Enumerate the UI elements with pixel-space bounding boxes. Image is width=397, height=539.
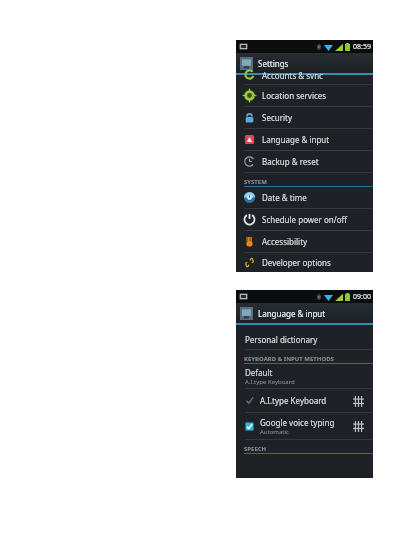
staticText: SPEECH [244,445,267,453]
button[interactable]: Settings [349,391,367,411]
staticText: Developer options [262,257,331,268]
staticText: A.I.type Keyboard [260,395,327,406]
staticText: Default [245,367,273,378]
staticText: Date & time [262,192,307,203]
button[interactable]: Google voice typing [236,413,373,440]
button[interactable]: Personal dictionary [236,329,373,350]
staticText: Google voice typing [260,417,335,428]
staticText: A.I.type Keyboard [245,378,295,386]
staticText: 08:59 [353,42,371,52]
button[interactable]: Location services [236,85,373,107]
staticText: Backup & reset [262,156,319,167]
button[interactable]: Default [236,364,373,389]
button[interactable]: Language & input [236,129,373,151]
button[interactable]: Security [236,107,373,129]
staticText: Accessibility [262,236,308,247]
button[interactable]: Accessibility [236,231,373,253]
staticText: Automatic [260,428,289,436]
staticText: Personal dictionary [245,334,318,345]
button[interactable]: A.I.type Keyboard [236,389,373,413]
button[interactable]: Developer options [236,253,373,272]
button[interactable]: Settings [236,53,373,73]
staticText: Security [262,112,293,123]
button[interactable]: Settings [349,416,367,436]
staticText: Language & input [262,134,330,145]
staticText: Language & input [258,308,326,319]
staticText: Schedule power on/off [262,214,348,225]
staticText: Accounts & sync [262,70,323,79]
staticText: SYSTEM [244,178,267,186]
button[interactable]: Date & time [236,187,373,209]
button[interactable]: Schedule power on/off [236,209,373,231]
staticText: Location services [262,90,327,101]
staticText: KEYBOARD & INPUT METHODS [244,355,334,363]
staticText: Settings [258,58,289,69]
staticText: 09:00 [353,292,371,302]
button[interactable]: Language & input [236,303,373,323]
button[interactable]: Backup & reset [236,151,373,173]
button[interactable]: Accounts & sync [236,75,373,84]
